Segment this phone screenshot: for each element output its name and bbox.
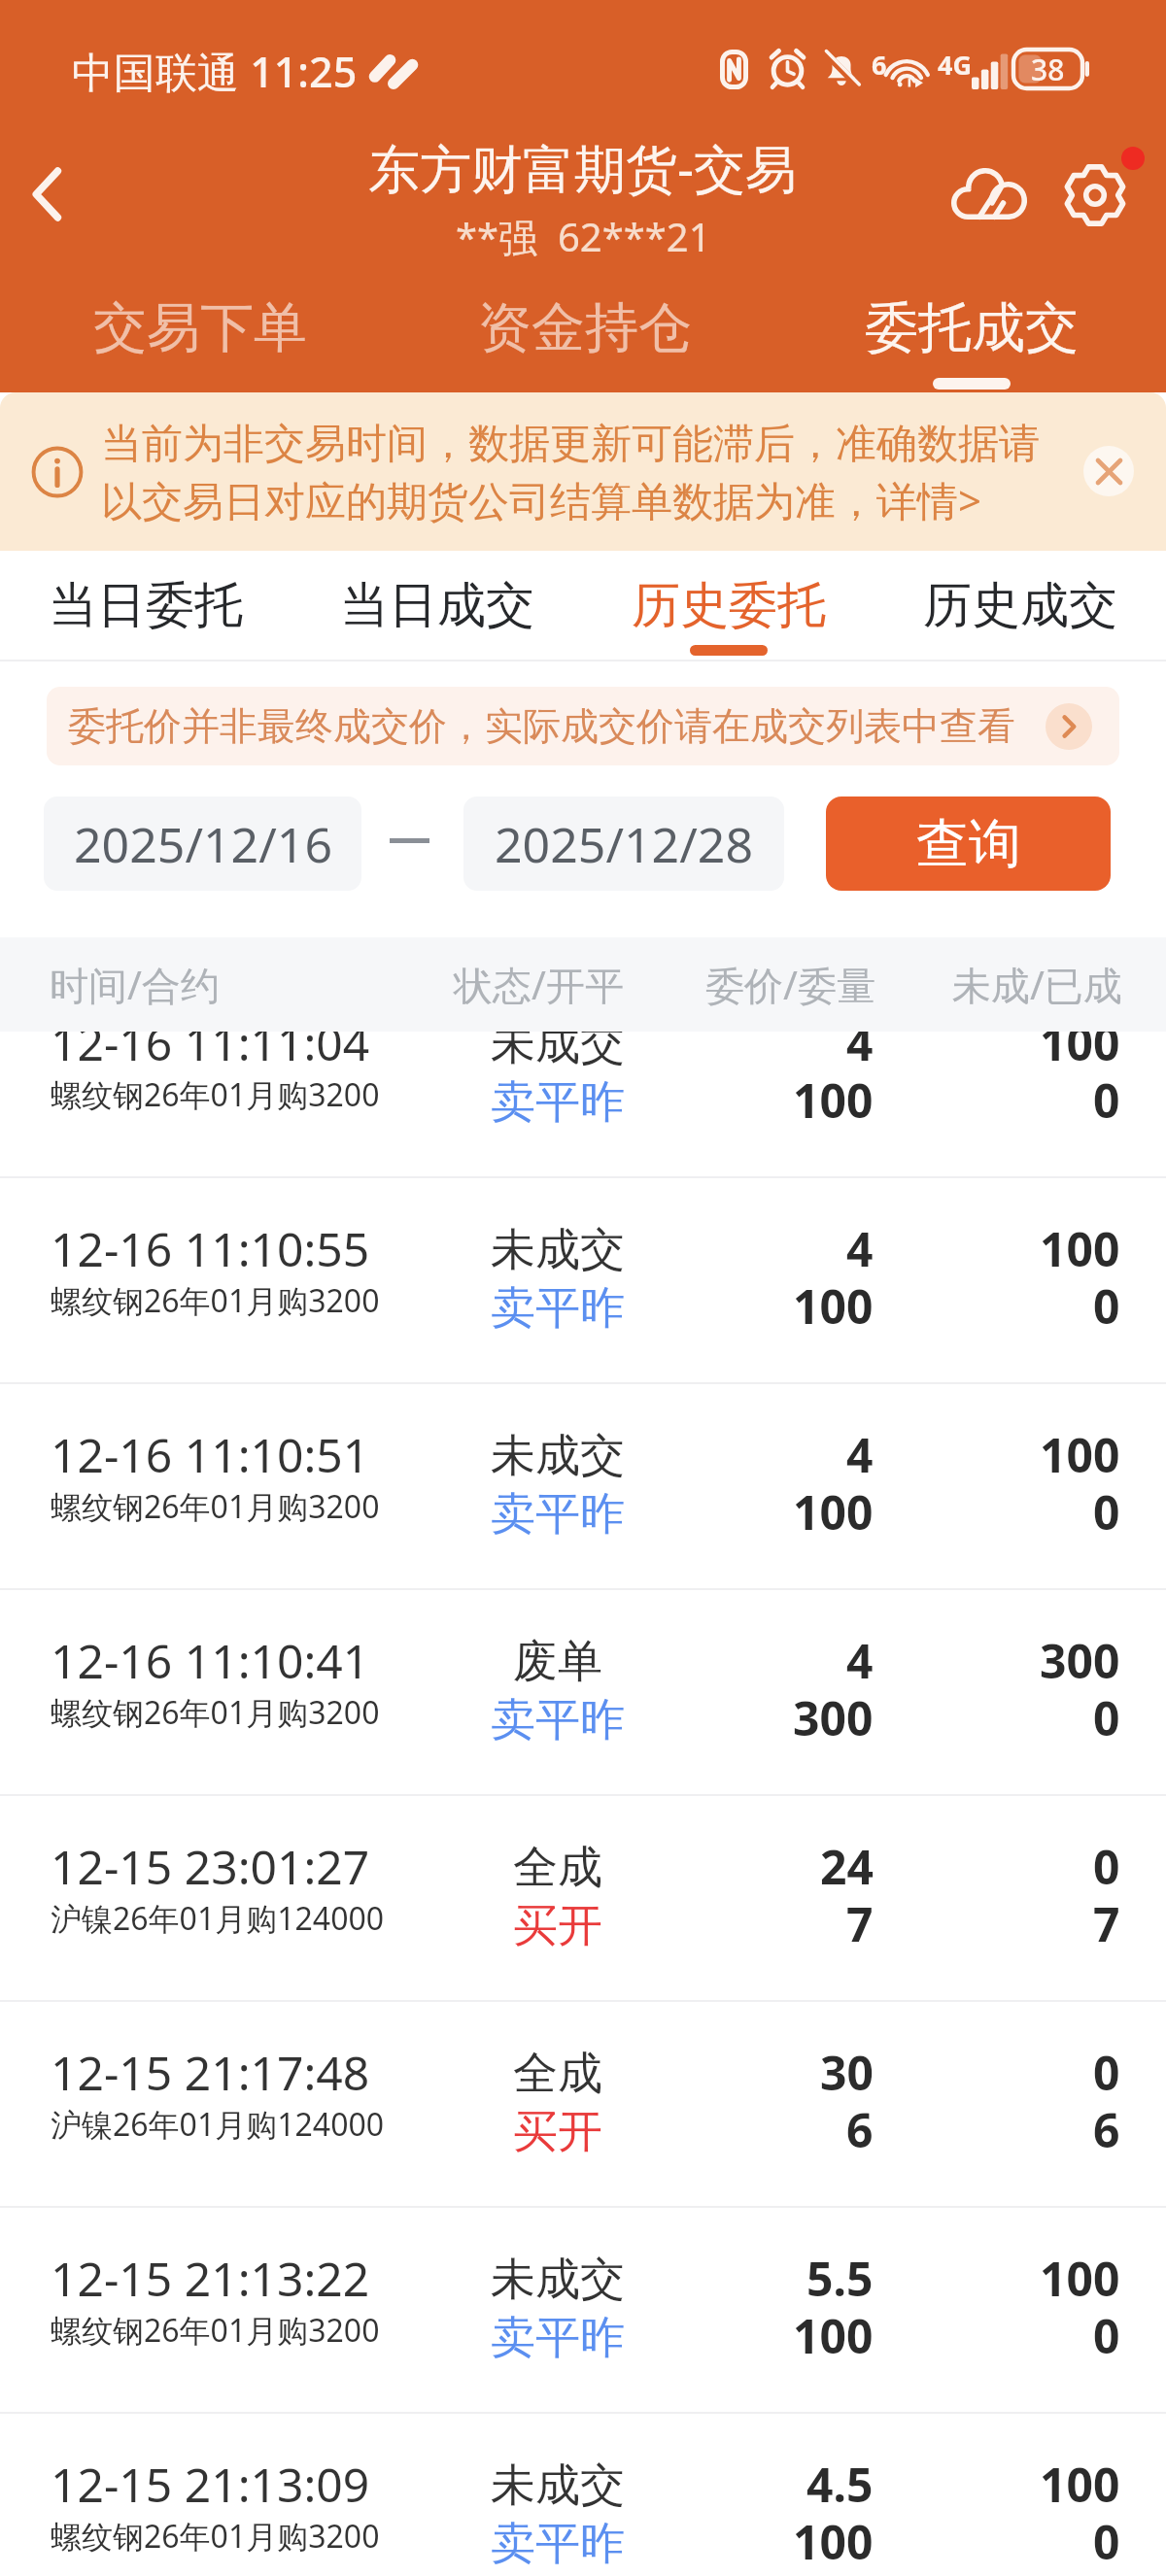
button[interactable]: 2025/12/28 [463,797,784,891]
button[interactable]: 12-15 23:01:27 [0,1796,1166,2002]
staticText: 卖平昨 [491,1280,625,1337]
button[interactable]: Cloud service [947,158,1031,229]
staticText: 100 [1040,1011,1120,1074]
staticText: 查询 [916,811,1021,877]
staticText: 卖平昨 [491,1692,625,1748]
button[interactable]: 交易下单 [64,294,336,395]
staticText: 6 [1093,2098,1120,2161]
button[interactable]: 委托价并非最终成交价，实际成交价请在成交列表中查看 [47,687,1119,765]
staticText: 100 [793,1480,874,1543]
staticText: 时间/合约 [50,958,220,1011]
staticText: 100 [1040,1217,1120,1280]
staticText: 2025/12/16 [74,811,332,877]
button[interactable]: 历史委托 [583,551,874,661]
staticText: 历史成交 [923,575,1117,636]
staticText: 卖平昨 [491,1486,625,1542]
staticText: 当日委托 [49,575,243,636]
button[interactable]: 委托成交 [836,294,1108,395]
button[interactable]: 当日成交 [291,551,583,661]
staticText: 螺纹钢26年01月购3200 [51,1485,380,1528]
staticText: 4 [846,1423,874,1486]
staticText: 委托成交 [865,294,1079,361]
button[interactable]: 资金持仓 [449,294,721,395]
staticText: 卖平昨 [491,2310,625,2366]
staticText: 卖平昨 [491,1074,625,1131]
staticText: 废单 [513,1634,602,1690]
button[interactable]: 12-15 21:13:09 [0,2414,1166,2576]
staticText: 状态/开平 [454,958,624,1011]
staticText: 6 [846,2098,874,2161]
staticText: 4.5 [806,2453,874,2516]
staticText: 12-15 21:13:22 [51,2247,370,2310]
button[interactable]: 12-15 21:17:48 [0,2002,1166,2208]
staticText: 12-15 21:13:09 [51,2453,370,2516]
button[interactable]: 当日委托 [0,551,291,661]
button[interactable]: 12-16 11:10:55 [0,1178,1166,1384]
staticText: 螺纹钢26年01月购3200 [51,2309,380,2352]
button[interactable]: 2025/12/16 [44,797,361,891]
button[interactable]: Settings [1064,164,1126,226]
staticText: 5.5 [806,2247,874,2310]
staticText: 当日成交 [340,575,534,636]
staticText: 100 [1040,1423,1120,1486]
staticText: 未成交 [491,2457,625,2514]
staticText: 买开 [513,2104,602,2160]
staticText: 12-16 11:10:41 [51,1629,370,1692]
staticText: 4 [846,1011,874,1074]
staticText: 0 [1093,2510,1120,2573]
staticText: 100 [793,1274,874,1338]
staticText: 当前为非交易时间，数据更新可能滞后，准确数据请 [101,419,1040,470]
staticText: 0 [1093,2041,1120,2104]
staticText: 买开 [513,1898,602,1954]
staticText: 中国联通 11:25 [72,43,358,100]
staticText: 螺纹钢26年01月购3200 [51,1073,380,1116]
button[interactable]: Close banner [1083,446,1134,496]
staticText: 100 [793,2510,874,2573]
staticText: 未成交 [491,2252,625,2308]
staticText: 300 [1040,1629,1120,1692]
staticText: 0 [1093,1068,1120,1132]
staticText: 4 [846,1217,874,1280]
staticText: 未成交 [491,1428,625,1484]
staticText: 12-16 11:10:51 [51,1423,370,1486]
staticText: 12-15 21:17:48 [51,2041,370,2104]
staticText: 螺纹钢26年01月购3200 [51,1691,380,1734]
staticText: 交易下单 [93,294,307,361]
staticText: 未成交 [491,1016,625,1072]
staticText: 螺纹钢26年01月购3200 [51,2515,380,2558]
staticText: **强 62***21 [456,210,711,263]
staticText: 12-16 11:11:04 [51,1011,370,1074]
button[interactable]: Back [12,159,82,229]
staticText: 100 [1040,2453,1120,2516]
staticText: 未成/已成 [952,958,1122,1011]
staticText: 东方财富期货-交易 [368,132,798,202]
staticText: 全成 [513,1840,602,1896]
button[interactable]: 历史成交 [874,551,1166,661]
button[interactable]: 12-16 11:10:41 [0,1590,1166,1796]
button[interactable]: 12-16 11:11:04 [0,972,1166,1178]
staticText: 0 [1093,1835,1120,1898]
button[interactable]: 12-15 21:13:22 [0,2208,1166,2414]
staticText: 7 [846,1892,874,1955]
staticText: 卖平昨 [491,2516,625,2572]
staticText: 12-15 23:01:27 [51,1835,370,1898]
staticText: 4G [938,47,972,83]
staticText: 4 [846,1629,874,1692]
staticText: 100 [793,1068,874,1132]
staticText: 38 [1031,50,1065,88]
staticText: 0 [1093,1480,1120,1543]
button[interactable]: 12-16 11:10:51 [0,1384,1166,1590]
staticText: 12-16 11:10:55 [51,1217,370,1280]
button[interactable]: 查询 [826,797,1111,891]
staticText: 24 [820,1835,874,1898]
staticText: 0 [1093,1274,1120,1338]
staticText: 沪镍26年01月购124000 [51,2103,385,2146]
staticText: 历史委托 [632,575,826,636]
staticText: 螺纹钢26年01月购3200 [51,1279,380,1322]
staticText: 6 [872,47,887,83]
staticText: 以交易日对应的期货公司结算单数据为准，详情> [101,472,982,527]
staticText: 300 [793,1686,874,1749]
staticText: 沪镍26年01月购124000 [51,1897,385,1940]
staticText: 2025/12/28 [495,811,753,877]
staticText: 0 [1093,1686,1120,1749]
